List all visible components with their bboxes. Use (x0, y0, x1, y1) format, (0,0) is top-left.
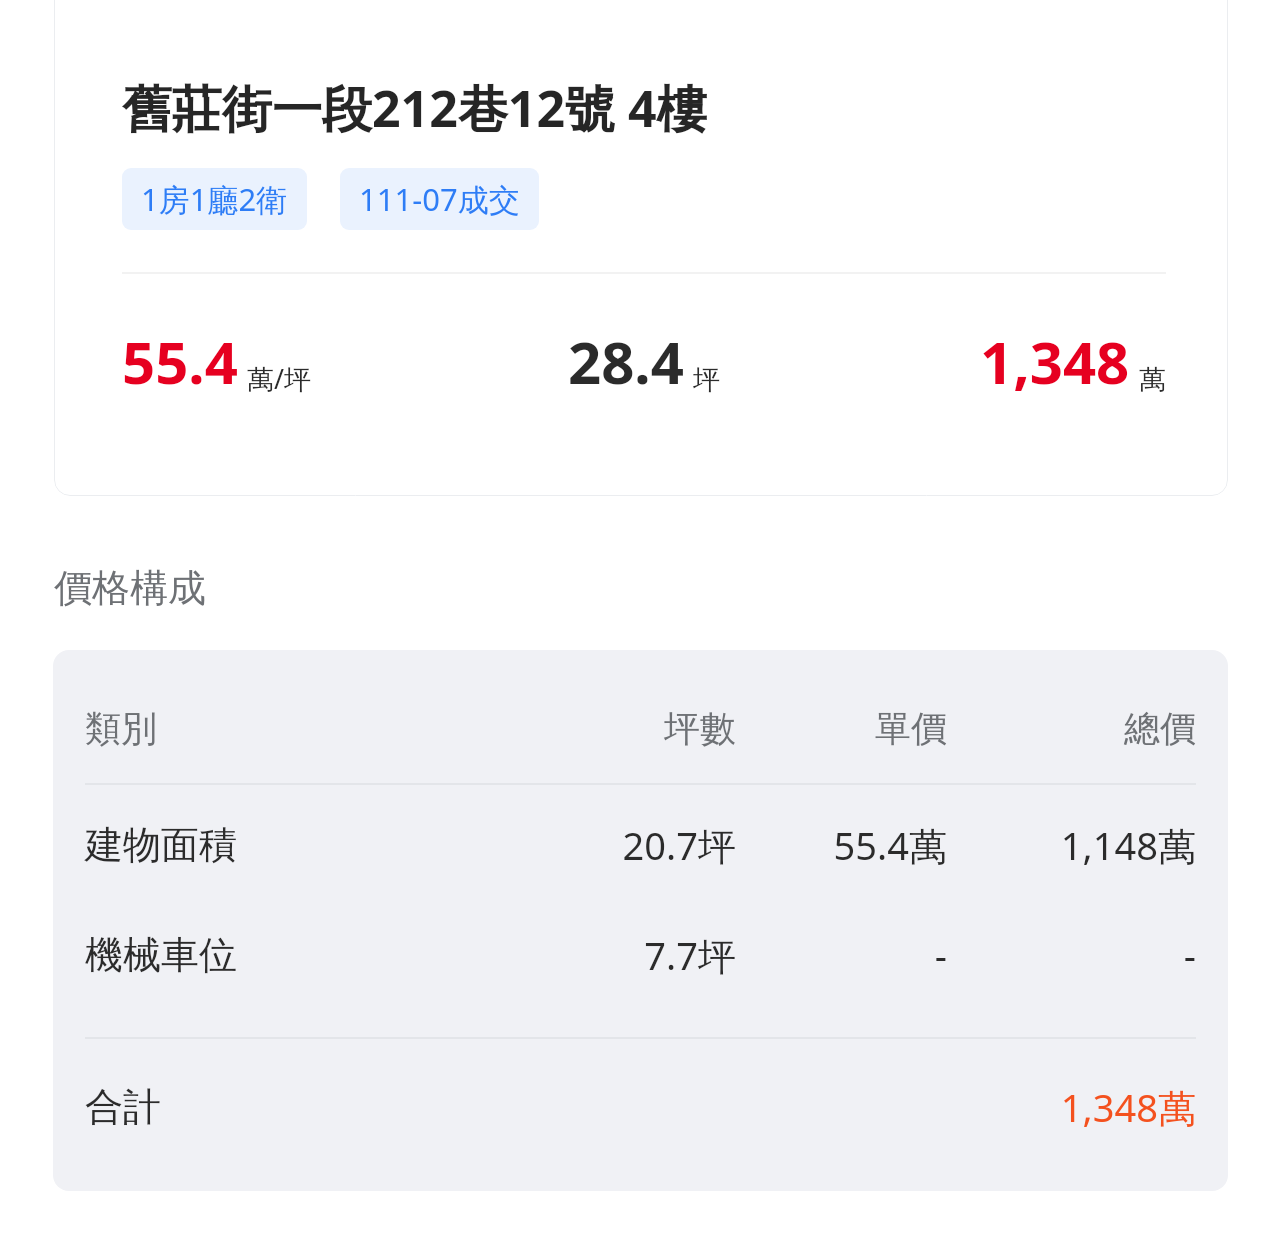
staticText: 建物面積 (85, 821, 487, 869)
staticText: 舊莊街一段212巷12號 4樓 (122, 74, 707, 142)
staticText: 1,348萬 (1060, 1081, 1196, 1133)
button[interactable]: 111-07成交 (340, 168, 539, 230)
staticText: 合計 (85, 1083, 1060, 1131)
staticText: 55.4 (122, 322, 238, 401)
staticText: 萬/坪 (247, 360, 312, 397)
button[interactable]: 1房1廳2衛 (122, 168, 307, 230)
staticText: 價格構成 (54, 564, 206, 612)
button[interactable]: 類別 (53, 650, 1228, 1191)
staticText: 總價 (947, 706, 1196, 751)
staticText: 111-07成交 (359, 178, 520, 220)
staticText: 55.4萬 (736, 819, 947, 871)
staticText: 7.7坪 (487, 929, 736, 981)
staticText: 類別 (85, 706, 487, 751)
button[interactable]: 舊莊街一段212巷12號 4樓 (54, 0, 1228, 496)
staticText: 坪數 (487, 706, 736, 751)
staticText: 單價 (736, 706, 947, 751)
staticText: 機械車位 (85, 931, 487, 979)
staticText: 20.7坪 (487, 819, 736, 871)
staticText: 28.4 (568, 322, 684, 401)
staticText: - (947, 929, 1196, 981)
staticText: 1,148萬 (947, 819, 1196, 871)
staticText: 萬 (1139, 363, 1166, 397)
staticText: 1,348 (980, 322, 1130, 401)
staticText: - (736, 929, 947, 981)
staticText: 1房1廳2衛 (141, 178, 288, 220)
staticText: 坪 (693, 363, 720, 397)
